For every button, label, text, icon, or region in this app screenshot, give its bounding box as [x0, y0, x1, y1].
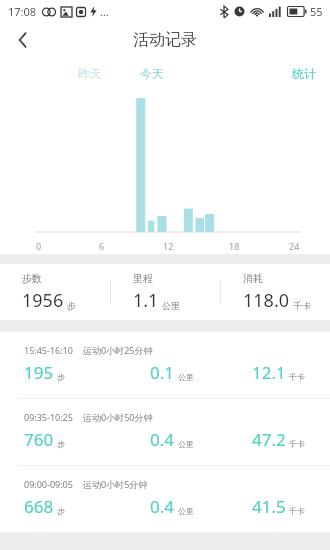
staticText: 公里: [178, 439, 194, 449]
staticText: 09:00-09:05: [24, 478, 73, 490]
staticText: 步: [67, 300, 76, 311]
staticText: 18: [229, 240, 240, 252]
staticText: 里程: [133, 272, 153, 285]
staticText: 41.5: [252, 495, 286, 518]
staticText: 千卡: [289, 506, 305, 516]
staticText: 步: [57, 439, 65, 449]
staticText: 千卡: [289, 439, 305, 449]
staticText: 668: [24, 495, 54, 518]
staticText: 千卡: [289, 372, 305, 382]
button[interactable]: 09:00-09:05: [0, 465, 330, 532]
button[interactable]: 里程: [111, 272, 220, 313]
staticText: 17:08: [8, 4, 37, 19]
staticText: 1956: [22, 288, 64, 313]
staticText: 15:45-16:10: [24, 344, 73, 356]
staticText: 公里: [178, 372, 194, 382]
staticText: 760: [24, 428, 54, 451]
staticText: 今天: [140, 66, 164, 81]
staticText: 12: [163, 240, 174, 252]
staticText: 消耗: [243, 272, 263, 285]
button[interactable]: 09:35-10:25: [0, 398, 330, 465]
staticText: 0: [36, 240, 42, 252]
staticText: 0.1: [150, 361, 175, 384]
button[interactable]: 步数: [0, 272, 110, 313]
staticText: …: [100, 4, 109, 19]
staticText: 运动0小时5分钟: [83, 478, 148, 490]
staticText: 12.1: [252, 361, 286, 384]
staticText: 步数: [22, 272, 42, 285]
staticText: 步: [57, 506, 65, 516]
staticText: 步: [57, 372, 65, 382]
staticText: 1.1: [133, 288, 159, 313]
button[interactable]: 15:45-16:10: [0, 332, 330, 398]
staticText: 47.2: [252, 428, 286, 451]
button[interactable]: 统计: [286, 63, 322, 84]
staticText: 195: [24, 361, 54, 384]
staticText: 公里: [162, 300, 180, 311]
staticText: 千卡: [293, 300, 311, 311]
staticText: 公里: [178, 506, 194, 516]
staticText: 运动0小时50分钟: [83, 411, 153, 423]
staticText: 6: [99, 240, 105, 252]
button[interactable]: 今天: [134, 63, 170, 84]
staticText: 0.4: [150, 428, 175, 451]
staticText: 55: [310, 4, 323, 19]
staticText: 0.4: [150, 495, 175, 518]
button[interactable]: 消耗: [221, 272, 330, 313]
staticText: 运动0小时25分钟: [83, 344, 153, 356]
button[interactable]: Back: [8, 25, 38, 55]
staticText: 统计: [292, 66, 316, 81]
button[interactable]: 昨天: [72, 63, 108, 84]
staticText: 活动记录: [133, 30, 197, 50]
staticText: 昨天: [78, 66, 102, 81]
staticText: 118.0: [243, 288, 290, 313]
staticText: 09:35-10:25: [24, 411, 73, 423]
staticText: 24: [289, 240, 300, 252]
